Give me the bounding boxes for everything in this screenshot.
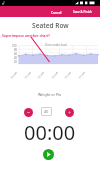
staticText: Save & Finish	[73, 10, 92, 14]
staticText: 13 Jun 2017	[37, 66, 48, 79]
staticText: 20	[14, 60, 17, 64]
staticText: 13 Jun 2017	[78, 66, 89, 79]
staticText: 60	[14, 52, 17, 56]
staticText: 40	[14, 56, 17, 60]
staticText: 45	[44, 109, 49, 114]
button[interactable]: Decrease weight	[24, 108, 33, 117]
button[interactable]: Increase weight	[65, 108, 74, 117]
staticText: 00:00	[24, 119, 76, 146]
button[interactable]: Start timer	[43, 149, 54, 160]
staticText: 13 Jun 2017	[24, 66, 35, 79]
staticText: Time under load	[45, 43, 67, 47]
staticText: 13 Jun 2017	[51, 66, 62, 79]
staticText: 13 Jun 2017	[10, 66, 21, 79]
staticText: Seated Row	[32, 21, 69, 30]
button[interactable]: Save & Finish	[73, 6, 92, 17]
staticText: Cancel	[51, 10, 62, 14]
staticText: Weight or Pin	[38, 92, 62, 97]
button[interactable]: Cancel	[51, 6, 62, 17]
staticText: Superimpose another chart?	[2, 33, 50, 38]
staticText: 100	[12, 44, 17, 48]
button[interactable]: Superimpose another chart?	[2, 33, 50, 38]
staticText: 80	[14, 48, 17, 52]
staticText: 13 Jun 2017	[64, 66, 75, 79]
button[interactable]: 45	[41, 107, 52, 116]
